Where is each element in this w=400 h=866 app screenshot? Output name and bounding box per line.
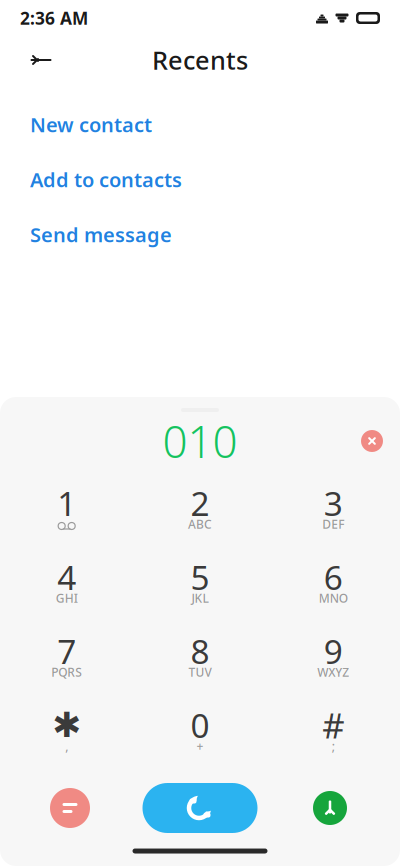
staticText: 9 bbox=[324, 629, 343, 673]
button[interactable]: 7 bbox=[0, 620, 133, 694]
staticText: 5 bbox=[190, 555, 209, 599]
staticText: GHI bbox=[56, 590, 78, 606]
staticText: ; bbox=[332, 738, 335, 754]
staticText: 0 bbox=[190, 703, 209, 747]
staticText: DEF bbox=[322, 516, 344, 532]
staticText: Send message bbox=[30, 221, 172, 248]
button[interactable]: Send message bbox=[30, 207, 172, 262]
button[interactable]: # bbox=[267, 694, 400, 768]
button[interactable]: Call options bbox=[38, 780, 102, 836]
button[interactable]: 9 bbox=[267, 620, 400, 694]
staticText: , bbox=[65, 738, 68, 754]
staticText: ✱ bbox=[52, 705, 81, 745]
staticText: 2:36 AM bbox=[20, 6, 88, 29]
button[interactable]: 5 bbox=[133, 546, 267, 620]
button[interactable]: 6 bbox=[267, 546, 400, 620]
button[interactable]: 2 bbox=[133, 472, 267, 546]
button[interactable]: ✱ bbox=[0, 694, 133, 768]
staticText: ABC bbox=[188, 516, 212, 532]
button[interactable]: 1 bbox=[0, 472, 133, 546]
staticText: 2 bbox=[190, 481, 209, 525]
staticText: JKL bbox=[191, 590, 208, 606]
staticText: 3 bbox=[324, 481, 343, 525]
staticText: PQRS bbox=[51, 664, 82, 680]
staticText: MNO bbox=[319, 590, 348, 606]
button[interactable]: Back bbox=[19, 38, 63, 82]
button[interactable]: 4 bbox=[0, 546, 133, 620]
staticText: 010 bbox=[162, 412, 237, 470]
staticText: + bbox=[196, 738, 203, 754]
button[interactable]: Add to contacts bbox=[30, 152, 182, 207]
staticText: # bbox=[322, 702, 344, 748]
button[interactable]: 3 bbox=[267, 472, 400, 546]
button[interactable]: New contact bbox=[30, 97, 152, 152]
button[interactable]: 0 bbox=[133, 694, 267, 768]
staticText: 7 bbox=[57, 629, 76, 673]
button[interactable]: Call bbox=[142, 783, 257, 833]
staticText: WXYZ bbox=[317, 664, 349, 680]
staticText: Add to contacts bbox=[30, 166, 182, 193]
staticText: 8 bbox=[190, 629, 209, 673]
staticText: New contact bbox=[30, 111, 152, 138]
staticText: 6 bbox=[324, 555, 343, 599]
button[interactable]: Clear number bbox=[352, 421, 392, 461]
button[interactable]: Hide dial pad bbox=[298, 780, 362, 836]
staticText: TUV bbox=[188, 664, 211, 680]
staticText: 4 bbox=[57, 555, 76, 599]
button[interactable]: 8 bbox=[133, 620, 267, 694]
staticText: 1 bbox=[57, 481, 76, 525]
staticText: Recents bbox=[152, 43, 248, 77]
